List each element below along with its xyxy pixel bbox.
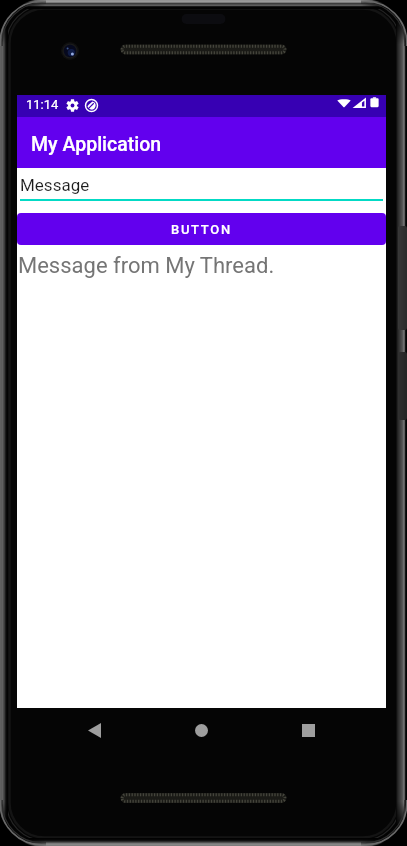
staticText: BUTTON — [171, 222, 232, 237]
staticText: Message from My Thread. — [18, 253, 275, 279]
staticText: Message — [20, 175, 90, 195]
staticText: 11:14 — [26, 97, 59, 112]
button[interactable]: BUTTON — [17, 213, 386, 245]
button[interactable]: Message — [17, 168, 386, 213]
button[interactable]: Home — [184, 713, 218, 747]
button[interactable]: Back — [77, 713, 111, 747]
staticText: My Application — [31, 133, 162, 156]
button[interactable]: Recent apps — [291, 713, 325, 747]
button[interactable]: My Application — [17, 117, 386, 168]
